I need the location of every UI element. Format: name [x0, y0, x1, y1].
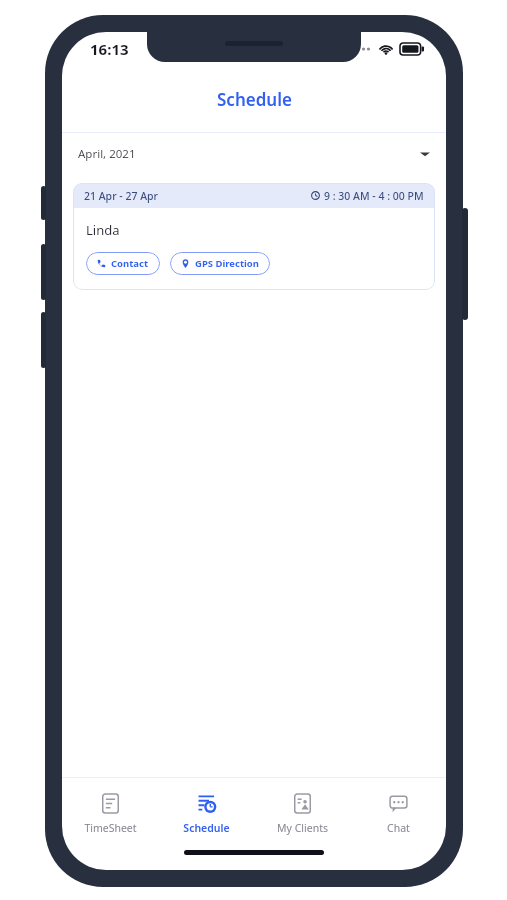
staticText: Linda: [86, 221, 120, 239]
other: TimeSheet: [100, 793, 121, 814]
other: Chat: [388, 793, 409, 814]
button[interactable]: April, 2021: [62, 133, 446, 175]
staticText: 9 : 30 AM - 4 : 00 PM: [324, 189, 424, 203]
staticText: GPS Direction: [195, 257, 259, 270]
staticText: My Clients: [277, 821, 328, 835]
button[interactable]: Contact: [86, 252, 160, 275]
staticText: 21 Apr - 27 Apr: [84, 189, 158, 203]
staticText: Schedule: [183, 821, 230, 835]
staticText: TimeSheet: [84, 821, 137, 835]
button[interactable]: Chat: [350, 778, 446, 850]
staticText: Schedule: [217, 88, 292, 111]
other: My Clients: [292, 793, 313, 814]
staticText: Contact: [111, 257, 149, 270]
button[interactable]: 21 Apr - 27 Apr: [73, 183, 435, 290]
button[interactable]: My Clients: [254, 778, 350, 850]
button[interactable]: Schedule: [158, 778, 254, 850]
button[interactable]: GPS Direction: [170, 252, 270, 275]
staticText: 16:13: [90, 39, 129, 59]
button[interactable]: TimeSheet: [62, 778, 158, 850]
staticText: April, 2021: [78, 146, 136, 162]
staticText: Chat: [387, 821, 410, 835]
other: Schedule: [196, 793, 217, 814]
